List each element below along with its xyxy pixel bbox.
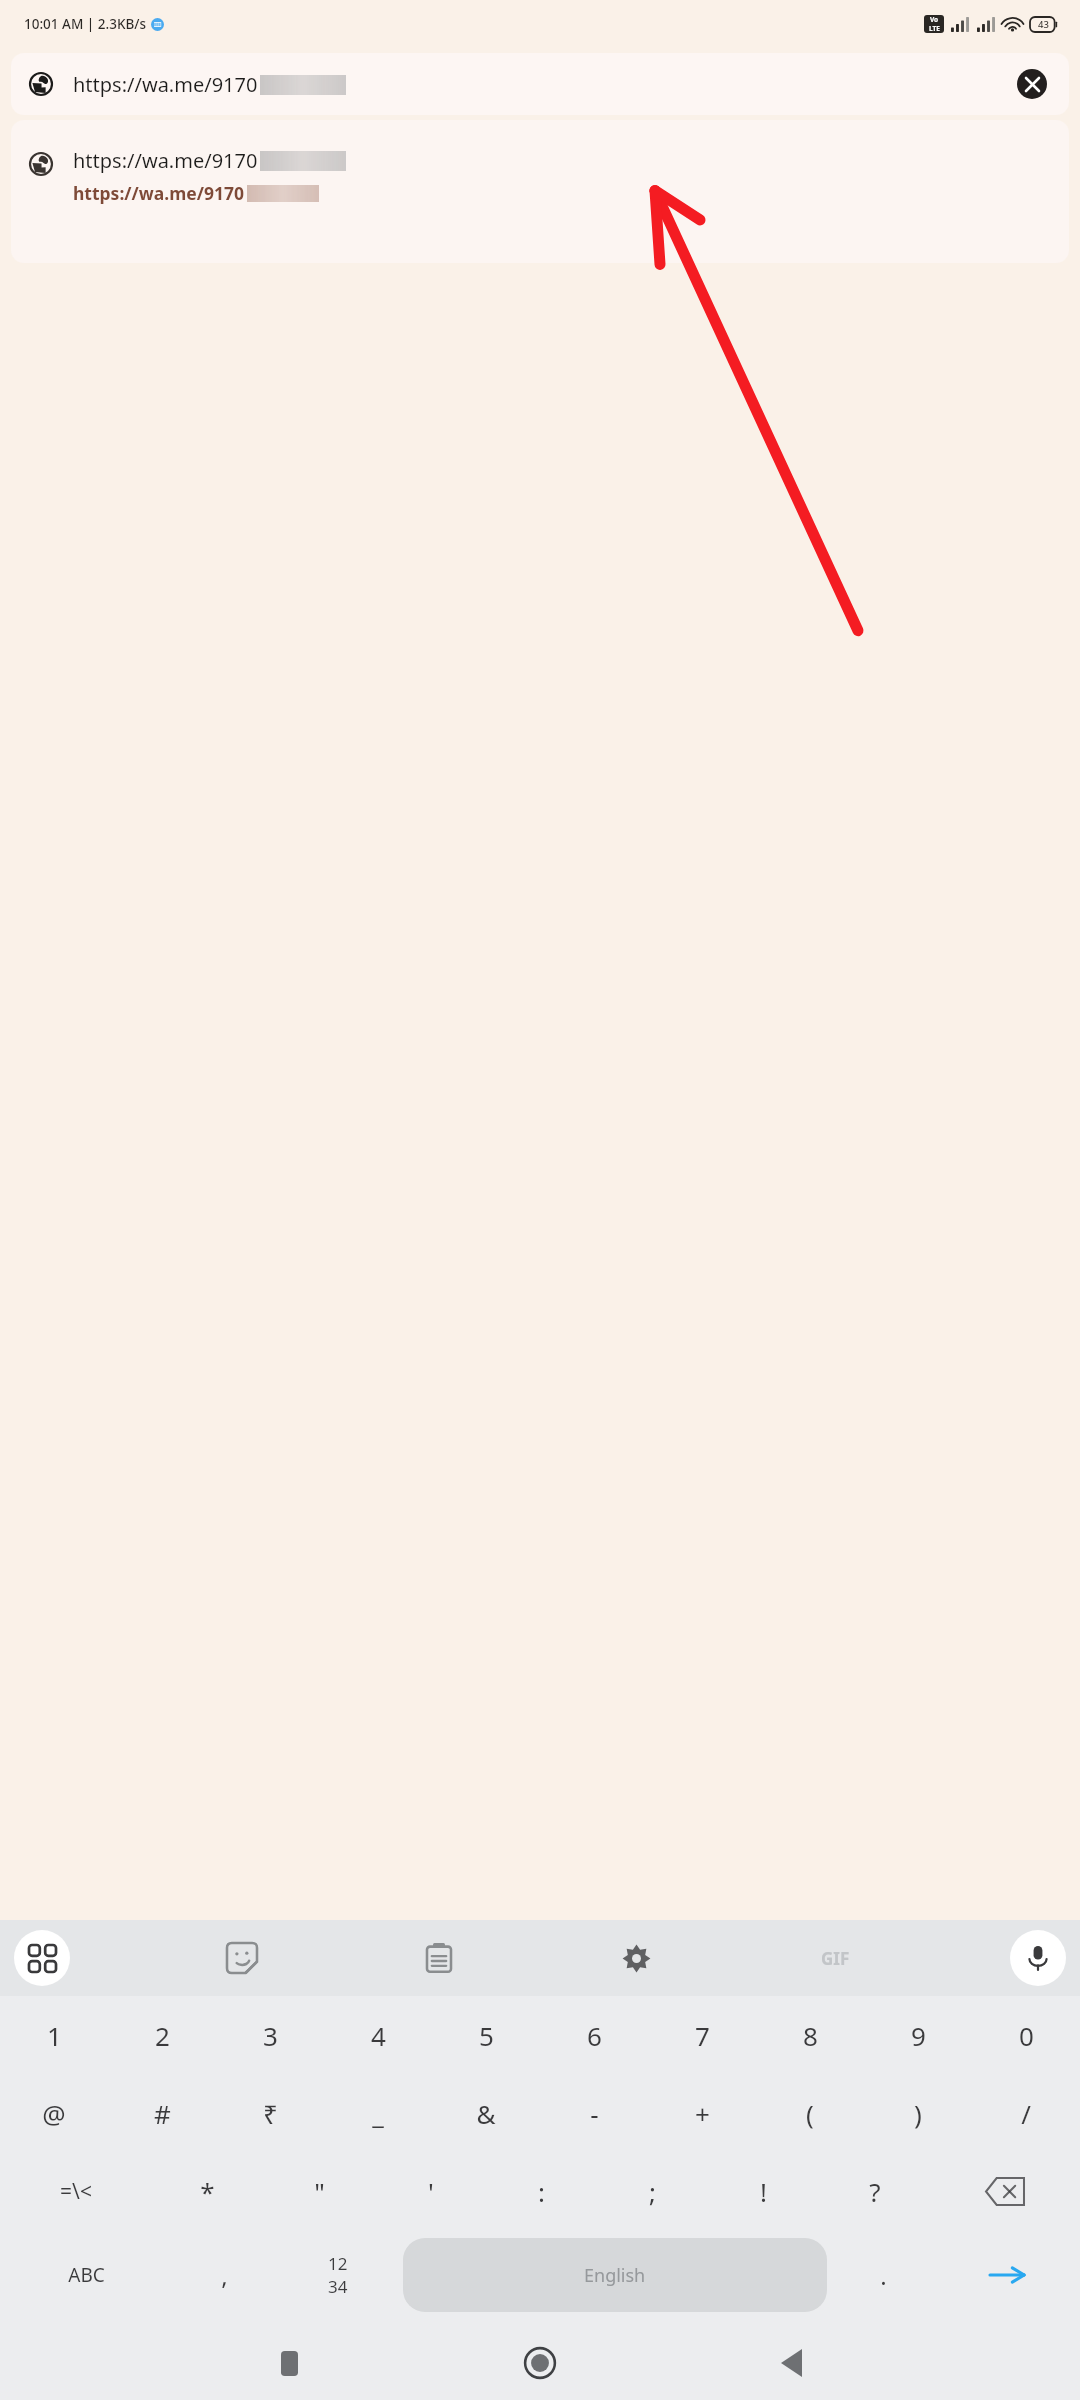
button[interactable]: 5 [432,1996,540,2074]
button[interactable]: # [108,2074,216,2152]
button[interactable]: 2 [108,1996,216,2074]
staticText: ) [914,2096,922,2131]
button[interactable]: Stickers [218,1934,266,1982]
staticText: LTE [929,24,940,33]
button[interactable]: : [486,2152,597,2230]
button[interactable]: ₹ [216,2074,324,2152]
button[interactable]: ? [819,2152,930,2230]
button[interactable]: Clipboard [415,1934,463,1982]
staticText: 9 [911,2018,926,2053]
staticText: 3 [263,2018,278,2053]
button[interactable]: https://wa.me/9170 [11,120,1069,263]
button[interactable]: 0 [972,1996,1080,2074]
button[interactable]: ABC [0,2230,172,2320]
button[interactable]: Back [762,2334,820,2392]
staticText: . [880,2259,887,2292]
staticText: / [1021,2096,1031,2131]
staticText: + [695,2096,710,2131]
staticText: ; [649,2174,656,2209]
staticText: _ [372,2096,384,2131]
staticText: GIF [821,1947,850,1970]
staticText: ? [869,2174,881,2209]
staticText: 8 [803,2018,818,2053]
button[interactable]: 8 [756,1996,864,2074]
button[interactable]: & [432,2074,540,2152]
staticText: # [154,2096,171,2131]
button[interactable]: ) [864,2074,972,2152]
staticText: https://wa.me/9170 [73,71,258,98]
staticText: https://wa.me/9170 [73,147,258,174]
staticText: ABC [68,2262,105,2288]
staticText: 4 [371,2018,386,2053]
staticText: ₹ [263,2096,278,2131]
button[interactable]: 1 [0,1996,108,2074]
staticText: 6 [587,2018,602,2053]
staticText: 2 [155,2018,170,2053]
button[interactable]: + [648,2074,756,2152]
staticText: https://wa.me/9170 [73,181,245,205]
button[interactable]: Clear text [1017,69,1047,99]
button[interactable]: ' [375,2152,486,2230]
staticText: 1 [47,2018,62,2053]
staticText: - [590,2096,599,2131]
button[interactable]: ( [756,2074,864,2152]
button[interactable]: https://wa.me/9170 [11,53,1069,115]
staticText: 0 [1019,2018,1034,2053]
staticText: 10:01 AM | 2.3KB/s [24,15,146,33]
staticText: , [221,2259,228,2292]
staticText: Vo [930,15,939,24]
button[interactable]: 12 [277,2230,399,2320]
staticText: 34 [328,2275,348,2298]
button[interactable]: - [540,2074,648,2152]
button[interactable]: Keyboard menu [14,1930,70,1986]
button[interactable]: 3 [216,1996,324,2074]
button[interactable]: Recents [260,2334,318,2392]
button[interactable]: English [403,2238,827,2312]
staticText: * [200,2174,215,2209]
staticText: @ [42,2096,66,2131]
button[interactable]: . [831,2230,936,2320]
button[interactable]: ; [597,2152,708,2230]
staticText: 12 [328,2252,348,2275]
staticText: " [314,2174,325,2209]
button[interactable]: , [172,2230,277,2320]
staticText: ' [428,2174,434,2209]
staticText: : [538,2174,545,2209]
button[interactable]: " [263,2152,375,2230]
button[interactable]: _ [324,2074,432,2152]
staticText: ( [806,2096,814,2131]
staticText: & [476,2096,496,2131]
button[interactable]: =\< [0,2152,151,2230]
staticText: 7 [695,2018,710,2053]
staticText: English [584,2263,646,2288]
button[interactable]: Backspace [930,2152,1080,2230]
button[interactable]: Voice input [1010,1930,1066,1986]
button[interactable]: ! [708,2152,819,2230]
staticText: 5 [479,2018,494,2053]
button[interactable]: 7 [648,1996,756,2074]
button[interactable]: Settings [612,1934,660,1982]
button[interactable]: 6 [540,1996,648,2074]
button[interactable]: / [972,2074,1080,2152]
staticText: =\< [60,2177,92,2206]
button[interactable]: 9 [864,1996,972,2074]
button[interactable]: * [151,2152,263,2230]
staticText: 43 [1038,18,1049,31]
button[interactable]: GIF [809,1932,861,1984]
button[interactable]: @ [0,2074,108,2152]
button[interactable]: Home [511,2334,569,2392]
button[interactable]: 4 [324,1996,432,2074]
staticText: ! [760,2174,767,2209]
button[interactable]: Enter [936,2230,1080,2320]
